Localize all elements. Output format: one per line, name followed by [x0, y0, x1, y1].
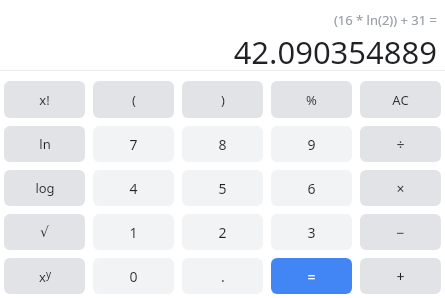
staticText: + — [396, 267, 405, 286]
staticText: √ — [40, 224, 49, 240]
button[interactable]: % — [271, 81, 352, 118]
staticText: 6 — [307, 179, 316, 198]
staticText: ÷ — [396, 135, 405, 154]
button[interactable]: √ — [4, 214, 85, 250]
staticText: = — [307, 267, 316, 286]
staticText: 3 — [307, 223, 316, 242]
staticText: ln — [39, 135, 51, 153]
staticText: x! — [39, 91, 50, 109]
button[interactable]: 3 — [271, 214, 352, 250]
staticText: 5 — [218, 179, 227, 198]
staticText: . — [221, 267, 225, 286]
staticText: log — [35, 179, 55, 197]
button[interactable]: ) — [182, 81, 263, 118]
staticText: % — [306, 91, 317, 109]
staticText: AC — [392, 91, 409, 109]
staticText: 7 — [129, 135, 138, 154]
staticText: ) — [221, 91, 225, 109]
staticText: 4 — [129, 179, 138, 198]
staticText: 9 — [307, 135, 316, 154]
staticText: × — [396, 179, 405, 198]
button[interactable]: ( — [93, 81, 174, 118]
staticText: ( — [132, 91, 136, 109]
button[interactable]: 5 — [182, 170, 263, 206]
button[interactable]: 9 — [271, 126, 352, 162]
button[interactable]: 4 — [93, 170, 174, 206]
button[interactable]: 6 — [271, 170, 352, 206]
button[interactable]: 7 — [93, 126, 174, 162]
button[interactable]: 8 — [182, 126, 263, 162]
button[interactable]: log — [4, 170, 85, 206]
staticText: 8 — [218, 135, 227, 154]
staticText: − — [396, 223, 405, 242]
button[interactable]: xy — [4, 258, 85, 294]
staticText: xy — [39, 267, 51, 286]
staticText: (16 * ln(2)) + 31 = — [333, 11, 437, 29]
button[interactable]: 2 — [182, 214, 263, 250]
button[interactable]: − — [360, 214, 441, 250]
button[interactable]: Equals — [271, 258, 352, 294]
button[interactable]: 0 — [93, 258, 174, 294]
button[interactable]: ln — [4, 126, 85, 162]
button[interactable]: + — [360, 258, 441, 294]
button[interactable]: x! — [4, 81, 85, 118]
button[interactable]: All clear — [360, 81, 441, 118]
staticText: 0 — [129, 267, 138, 286]
staticText: 1 — [129, 223, 138, 242]
staticText: 42.090354889 — [233, 31, 437, 71]
button[interactable]: ÷ — [360, 126, 441, 162]
button[interactable]: × — [360, 170, 441, 206]
button[interactable]: 1 — [93, 214, 174, 250]
staticText: 2 — [218, 223, 227, 242]
button[interactable]: . — [182, 258, 263, 294]
